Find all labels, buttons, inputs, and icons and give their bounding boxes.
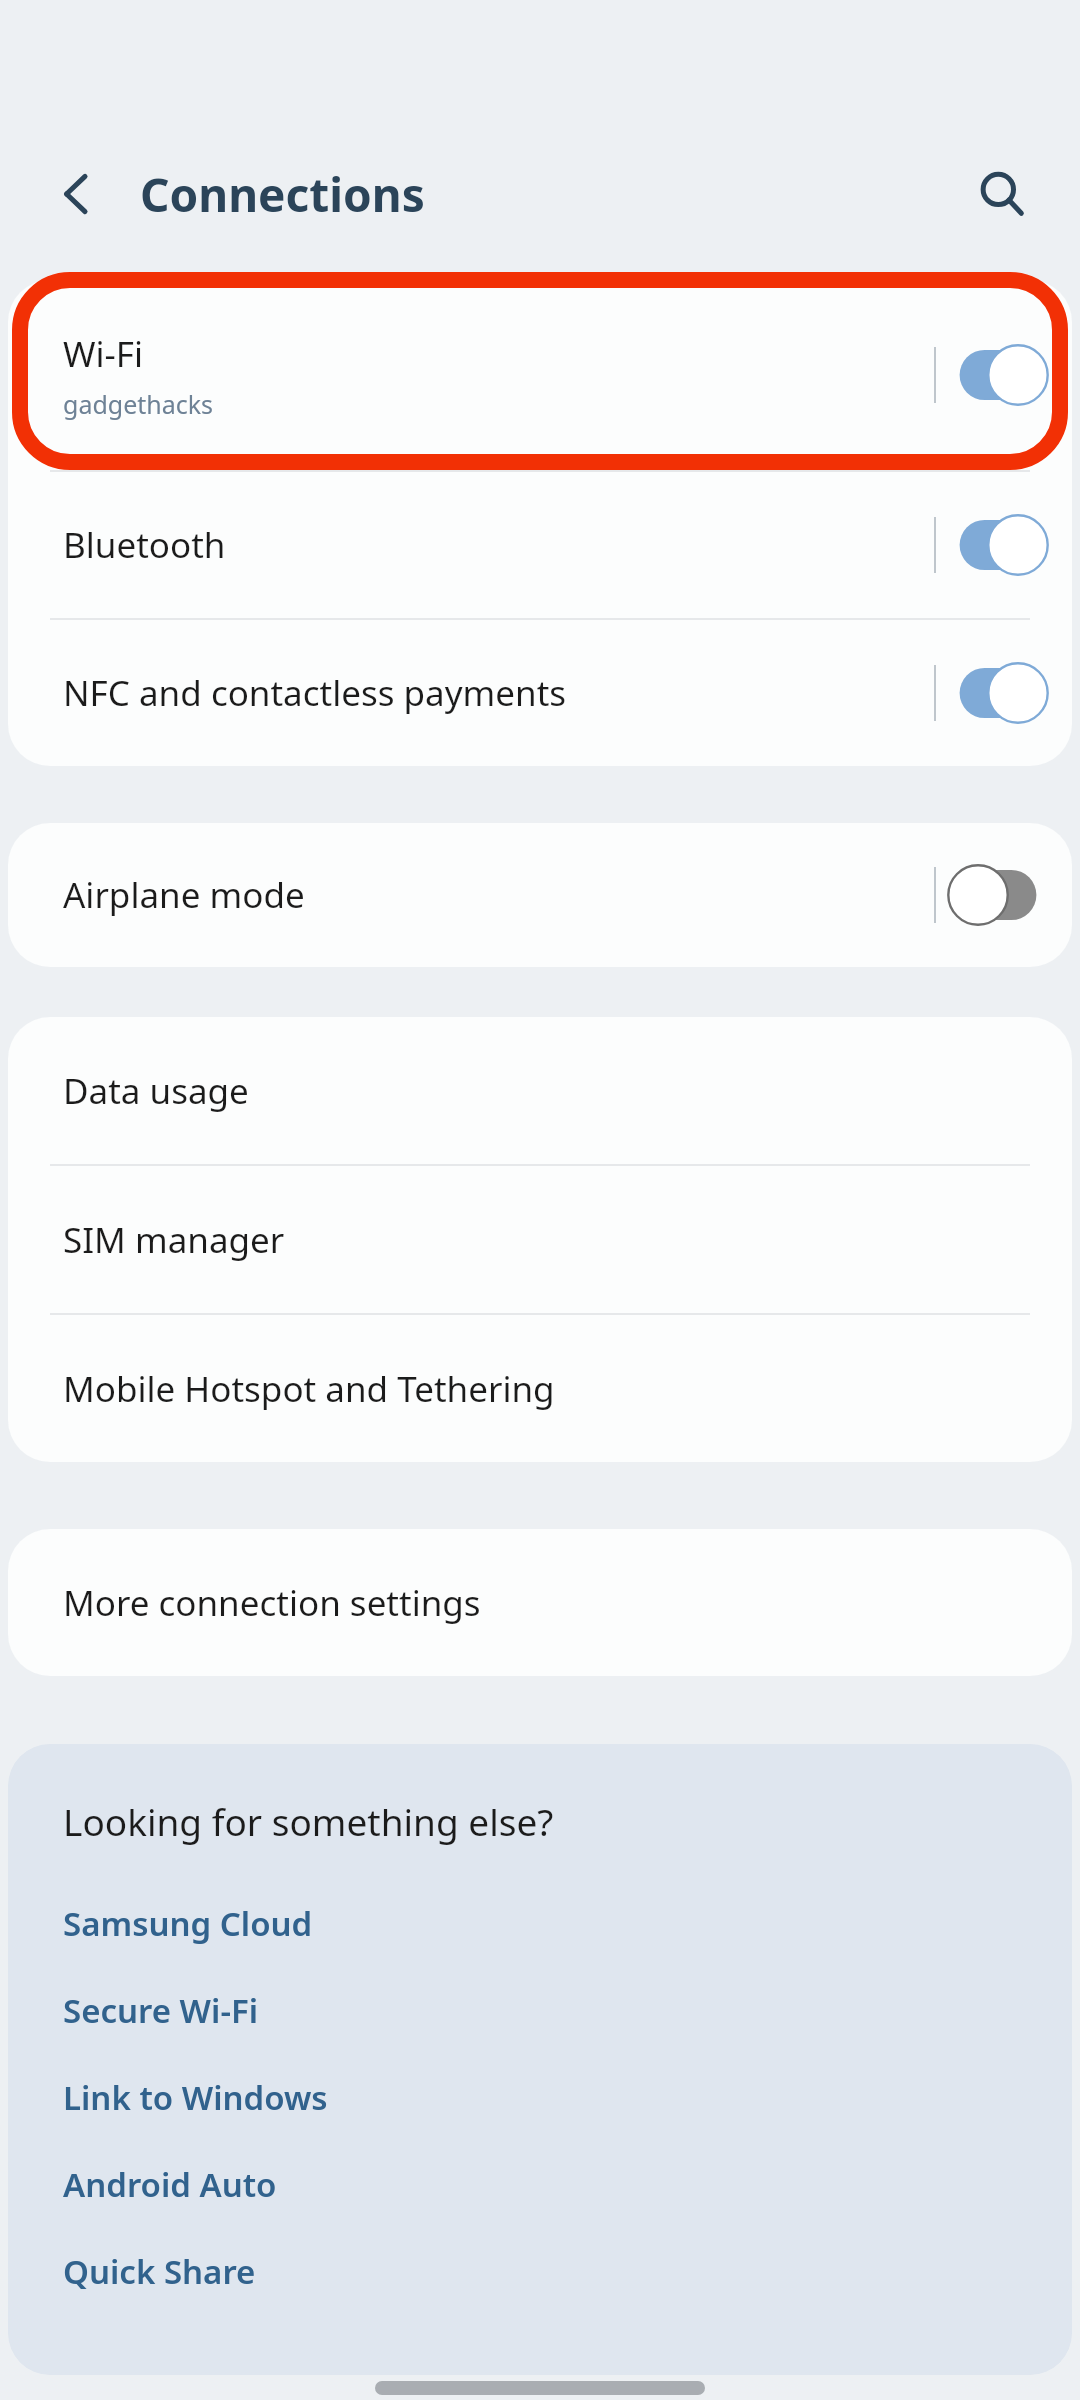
button[interactable]: Search bbox=[962, 154, 1042, 234]
button[interactable]: NFC and contactless payments bbox=[8, 620, 1072, 766]
staticText: Looking for something else? bbox=[63, 1796, 554, 1846]
staticText: Airplane mode bbox=[63, 871, 305, 919]
button[interactable]: Back bbox=[40, 156, 116, 232]
button[interactable]: Bluetooth bbox=[8, 472, 1072, 618]
staticText: gadgethacks bbox=[63, 387, 214, 421]
staticText: SIM manager bbox=[63, 1216, 285, 1264]
button[interactable]: Mobile Hotspot and Tethering bbox=[8, 1315, 1072, 1462]
button[interactable]: Wi-Fi bbox=[8, 280, 1072, 470]
staticText: More connection settings bbox=[63, 1579, 481, 1627]
staticText: Bluetooth bbox=[63, 521, 226, 569]
button[interactable]: SIM manager bbox=[8, 1166, 1072, 1313]
button[interactable]: Secure Wi-Fi bbox=[63, 1967, 1032, 2054]
staticText: Mobile Hotspot and Tethering bbox=[63, 1365, 555, 1413]
button[interactable]: Toggle on bbox=[950, 512, 1046, 578]
staticText: Quick Share bbox=[63, 2249, 256, 2294]
staticText: Android Auto bbox=[63, 2162, 277, 2207]
button[interactable]: Toggle off bbox=[950, 862, 1046, 928]
button[interactable]: More connection settings bbox=[8, 1529, 1072, 1676]
button[interactable]: Toggle on bbox=[950, 342, 1046, 408]
button[interactable]: Samsung Cloud bbox=[63, 1880, 1032, 1967]
staticText: Connections bbox=[140, 163, 425, 226]
staticText: Wi-Fi bbox=[63, 330, 144, 378]
button[interactable]: Data usage bbox=[8, 1017, 1072, 1164]
button[interactable]: Android Auto bbox=[63, 2141, 1032, 2228]
staticText: Secure Wi-Fi bbox=[63, 1988, 259, 2033]
staticText: Data usage bbox=[63, 1067, 249, 1115]
staticText: Link to Windows bbox=[63, 2075, 328, 2120]
button[interactable]: Quick Share bbox=[63, 2228, 1032, 2315]
button[interactable]: Toggle on bbox=[950, 660, 1046, 726]
staticText: NFC and contactless payments bbox=[63, 669, 567, 717]
button[interactable]: Airplane mode bbox=[8, 823, 1072, 967]
button[interactable]: Link to Windows bbox=[63, 2054, 1032, 2141]
staticText: Samsung Cloud bbox=[63, 1901, 313, 1946]
